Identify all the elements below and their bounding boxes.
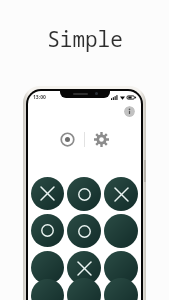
button[interactable]: X bbox=[104, 177, 138, 211]
staticText: 13:00 bbox=[33, 94, 46, 101]
button[interactable]: Settings bbox=[92, 130, 111, 149]
button[interactable]: O bbox=[31, 214, 64, 247]
staticText: Simple bbox=[47, 25, 123, 54]
button[interactable]: Timer bbox=[58, 130, 77, 149]
button[interactable]: Info bbox=[124, 106, 135, 117]
button[interactable]: X bbox=[67, 251, 101, 285]
button[interactable]: X bbox=[31, 177, 64, 210]
button[interactable]: Empty cell bbox=[104, 251, 138, 285]
button[interactable]: Empty cell bbox=[31, 279, 64, 300]
button[interactable]: Empty cell bbox=[67, 278, 101, 300]
button[interactable]: O bbox=[67, 214, 101, 248]
button[interactable]: Empty cell bbox=[104, 278, 138, 300]
button[interactable]: O bbox=[67, 177, 101, 211]
button[interactable]: Empty cell bbox=[31, 251, 64, 284]
button[interactable]: Empty cell bbox=[104, 214, 138, 248]
